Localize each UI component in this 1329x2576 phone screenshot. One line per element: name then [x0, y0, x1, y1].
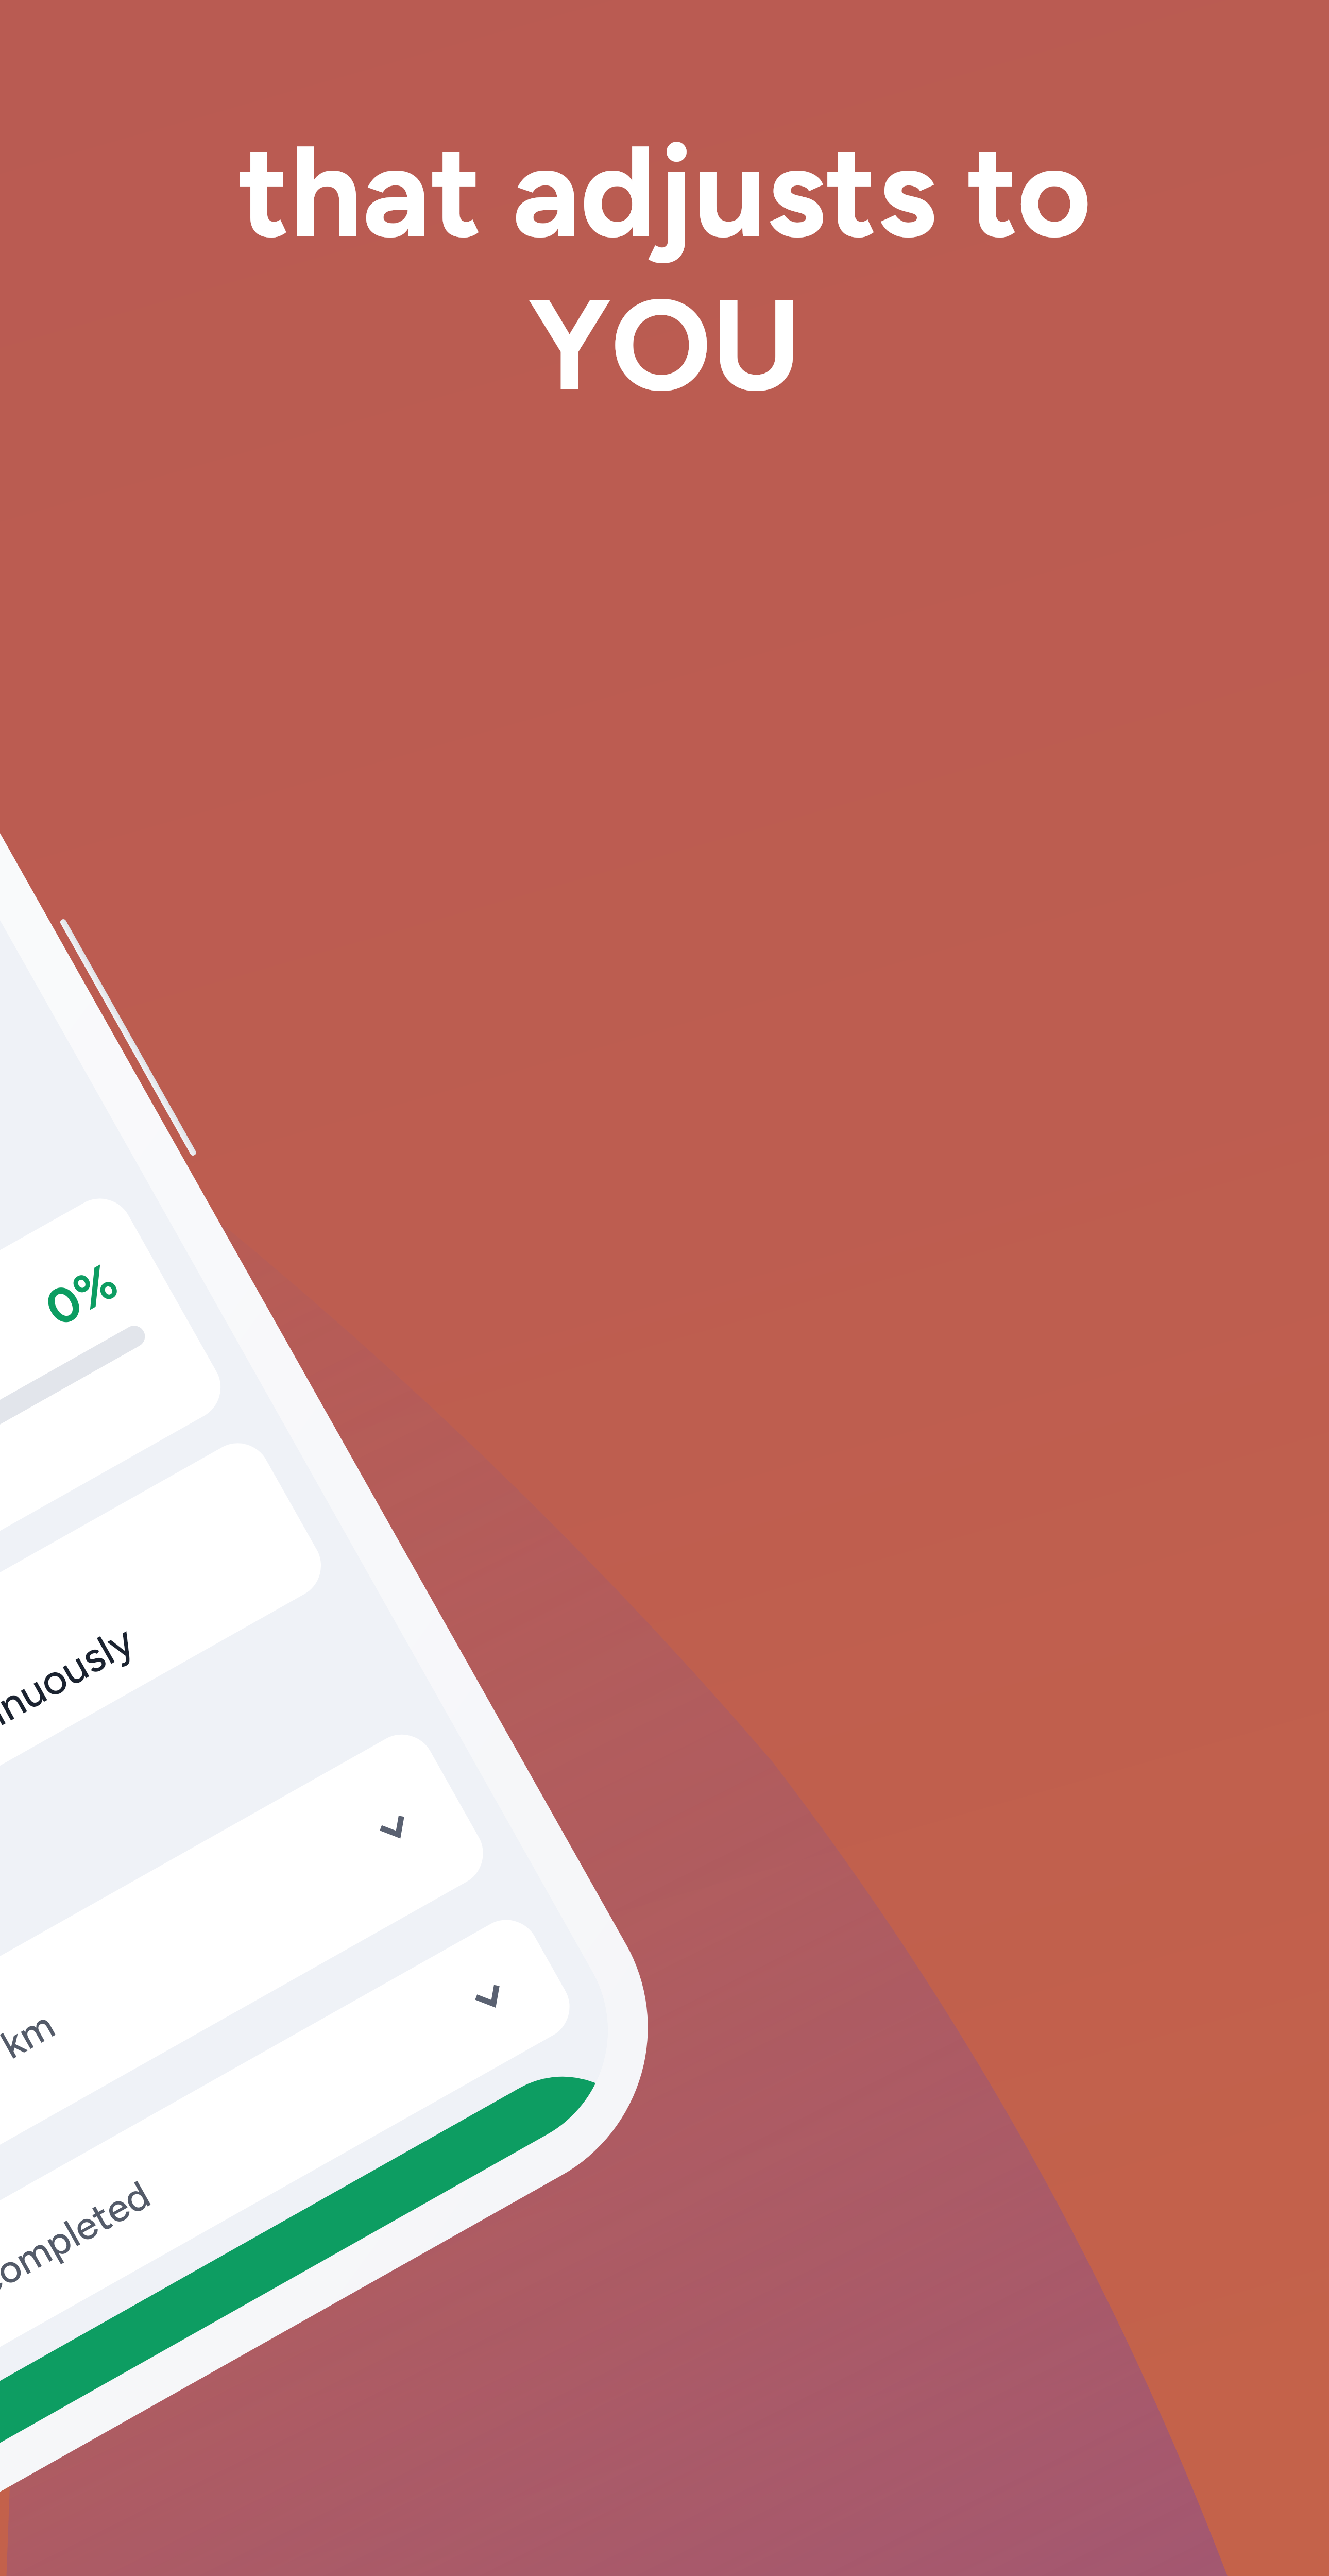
staticText: Easy run 5 km — [0, 2001, 62, 2162]
button[interactable]: Easy run 5 km — [0, 1723, 495, 2439]
staticText: 0% — [35, 1251, 128, 1339]
button[interactable]: Week 1 — [0, 1187, 232, 1973]
staticText: YOU — [528, 268, 802, 421]
staticText: that adjusts to — [238, 114, 1092, 268]
staticText: Your plan adapts continuously — [0, 1614, 142, 1939]
button[interactable]: Your plan adapts continuously — [0, 1431, 333, 2151]
button[interactable]: Workout completed — [0, 1908, 581, 2576]
staticText: Workout completed — [0, 2171, 158, 2384]
button[interactable]: Continue Training — [0, 2045, 622, 2576]
